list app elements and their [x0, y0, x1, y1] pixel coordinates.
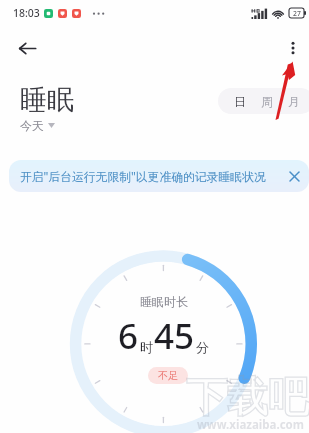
staticText: 睡眠时长 — [140, 294, 188, 309]
staticText: www.xiazaiba.com — [197, 417, 304, 433]
staticText: 周 — [261, 94, 273, 109]
staticText: 开启"后台运行无限制"以更准确的记录睡眠状况 — [20, 168, 266, 184]
staticText: 时 — [140, 339, 153, 355]
staticText: 45 — [154, 312, 195, 360]
staticText: 6 — [118, 312, 139, 360]
button[interactable]: Back — [10, 31, 44, 65]
button[interactable]: 周 — [253, 88, 280, 114]
button[interactable]: More options — [276, 31, 309, 65]
staticText: 27 — [293, 9, 301, 18]
staticText: 今天 — [20, 118, 44, 133]
staticText: 18:03 — [13, 6, 40, 20]
button[interactable]: Close banner — [283, 165, 305, 187]
staticText: 分 — [196, 339, 209, 355]
staticText: 睡眠 — [20, 83, 74, 117]
staticText: 月 — [288, 94, 300, 109]
button[interactable]: 开启"后台运行无限制"以更准确的记录睡眠状况 — [9, 160, 309, 192]
button[interactable]: 今天 — [20, 117, 61, 134]
staticText: 下载吧 — [186, 372, 309, 424]
button[interactable]: 月 — [280, 88, 307, 114]
staticText: 不足 — [158, 369, 178, 382]
staticText: 日 — [234, 94, 246, 109]
button[interactable]: 日 — [226, 88, 253, 114]
